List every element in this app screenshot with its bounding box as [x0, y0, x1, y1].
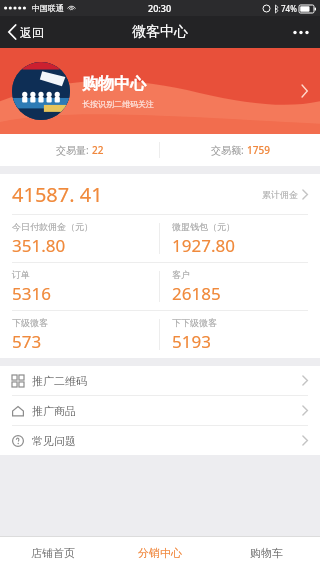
staticText: 长按识别二维码关注 [82, 99, 154, 109]
staticText: 返回 [20, 25, 44, 40]
staticText: 351.80 [12, 234, 66, 257]
button[interactable]: 订单 [0, 263, 159, 310]
staticText: 1927.80 [172, 234, 235, 257]
staticText: 中国联通 [32, 3, 64, 13]
button[interactable]: 客户 [160, 263, 320, 310]
staticText: 分销中心 [138, 546, 182, 560]
button[interactable]: 分销中心 [106, 537, 213, 568]
staticText: 订单 [12, 269, 30, 280]
staticText: 交易量: [56, 143, 89, 157]
staticText: 573 [12, 330, 42, 353]
staticText: 累计佣金 [262, 189, 298, 200]
staticText: 26185 [172, 282, 221, 305]
button[interactable]: 41587. 41 [0, 174, 320, 214]
button[interactable]: 下下级微客 [160, 311, 320, 358]
button[interactable]: 微盟钱包（元） [160, 215, 320, 262]
staticText: 20:30 [148, 2, 172, 14]
staticText: 微客中心 [132, 23, 188, 41]
staticText: 74% [281, 3, 297, 14]
staticText: 今日付款佣金（元） [12, 221, 93, 232]
staticText: 客户 [172, 269, 190, 280]
staticText: 常见问题 [32, 434, 76, 448]
staticText: 1759 [247, 143, 270, 157]
staticText: 店铺首页 [31, 546, 75, 560]
button[interactable]: 常见问题 [0, 426, 320, 455]
staticText: 下级微客 [12, 317, 48, 328]
staticText: 交易额: [211, 143, 244, 157]
button[interactable]: More options [282, 16, 320, 48]
button[interactable]: 下级微客 [0, 311, 159, 358]
staticText: 微盟钱包（元） [172, 221, 235, 232]
staticText: 购物中心 [82, 74, 146, 94]
button[interactable]: 今日付款佣金（元） [0, 215, 159, 262]
staticText: 5316 [12, 282, 51, 305]
button[interactable]: 返回 [0, 16, 52, 48]
staticText: 推广商品 [32, 404, 76, 418]
staticText: 5193 [172, 330, 211, 353]
staticText: 41587. 41 [12, 181, 103, 208]
button[interactable]: 购物中心 [0, 48, 320, 134]
staticText: 22 [92, 143, 104, 157]
button[interactable]: 推广商品 [0, 396, 320, 425]
staticText: 下下级微客 [172, 317, 217, 328]
staticText: 推广二维码 [32, 374, 87, 388]
staticText: 购物车 [250, 546, 283, 560]
button[interactable]: 购物车 [213, 537, 320, 568]
button[interactable]: 推广二维码 [0, 366, 320, 395]
button[interactable]: 店铺首页 [0, 537, 106, 568]
